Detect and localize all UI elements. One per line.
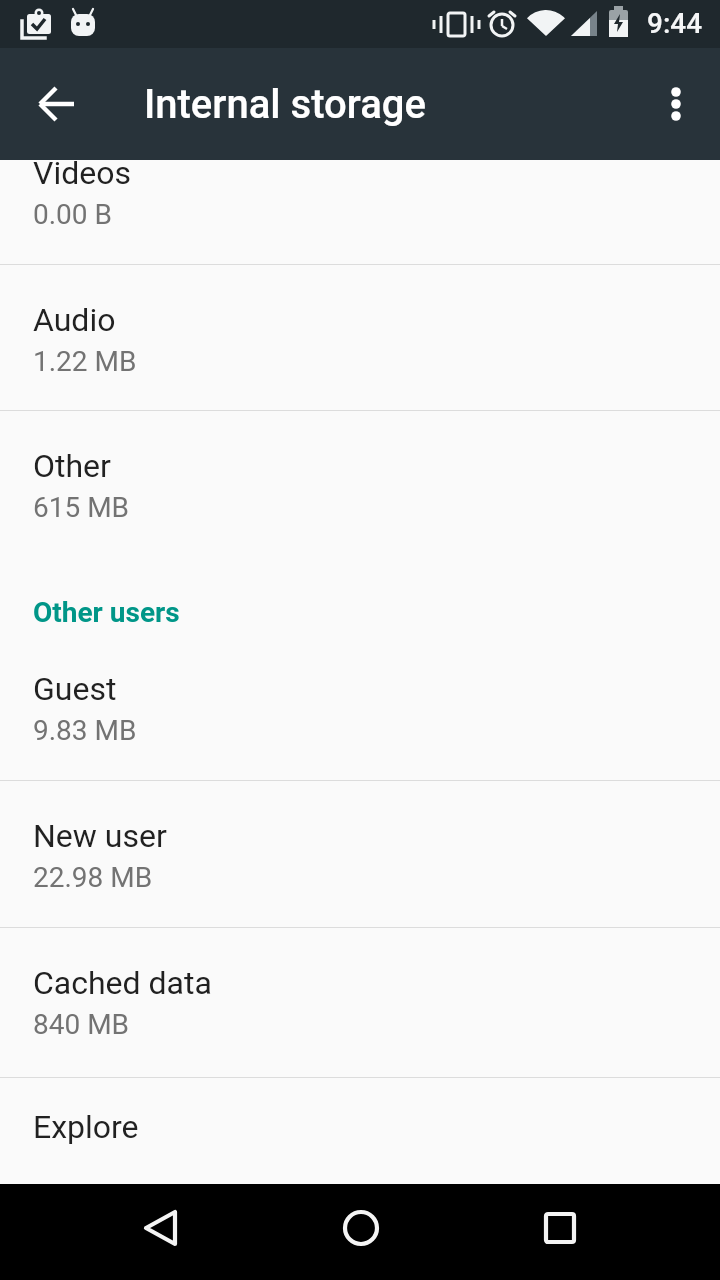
staticText: Explore <box>33 1108 139 1146</box>
button[interactable]: Videos <box>0 160 720 264</box>
button[interactable] <box>120 1192 200 1272</box>
staticText: Other users <box>33 596 180 629</box>
staticText: Audio <box>33 301 116 339</box>
button[interactable]: Cached data <box>0 928 720 1074</box>
staticText: 840 MB <box>33 1008 130 1041</box>
button[interactable] <box>644 72 708 136</box>
button[interactable] <box>16 64 96 144</box>
staticText: Internal storage <box>144 81 426 128</box>
button[interactable]: Explore <box>0 1078 720 1184</box>
button[interactable] <box>520 1192 600 1272</box>
staticText: 615 MB <box>33 491 130 524</box>
staticText: Videos <box>33 160 131 192</box>
staticText: 22.98 MB <box>33 861 153 894</box>
button[interactable] <box>321 1192 401 1272</box>
staticText: 9:44 <box>647 7 703 40</box>
button[interactable]: Other <box>0 411 720 557</box>
button[interactable]: Audio <box>0 265 720 411</box>
staticText: Cached data <box>33 964 212 1002</box>
button[interactable]: Guest <box>0 634 720 780</box>
staticText: 1.22 MB <box>33 345 137 378</box>
staticText: Guest <box>33 670 117 708</box>
staticText: Other <box>33 447 111 485</box>
staticText: New user <box>33 817 167 855</box>
staticText: 9.83 MB <box>33 714 137 747</box>
button[interactable]: New user <box>0 781 720 927</box>
staticText: 0.00 B <box>33 198 112 231</box>
